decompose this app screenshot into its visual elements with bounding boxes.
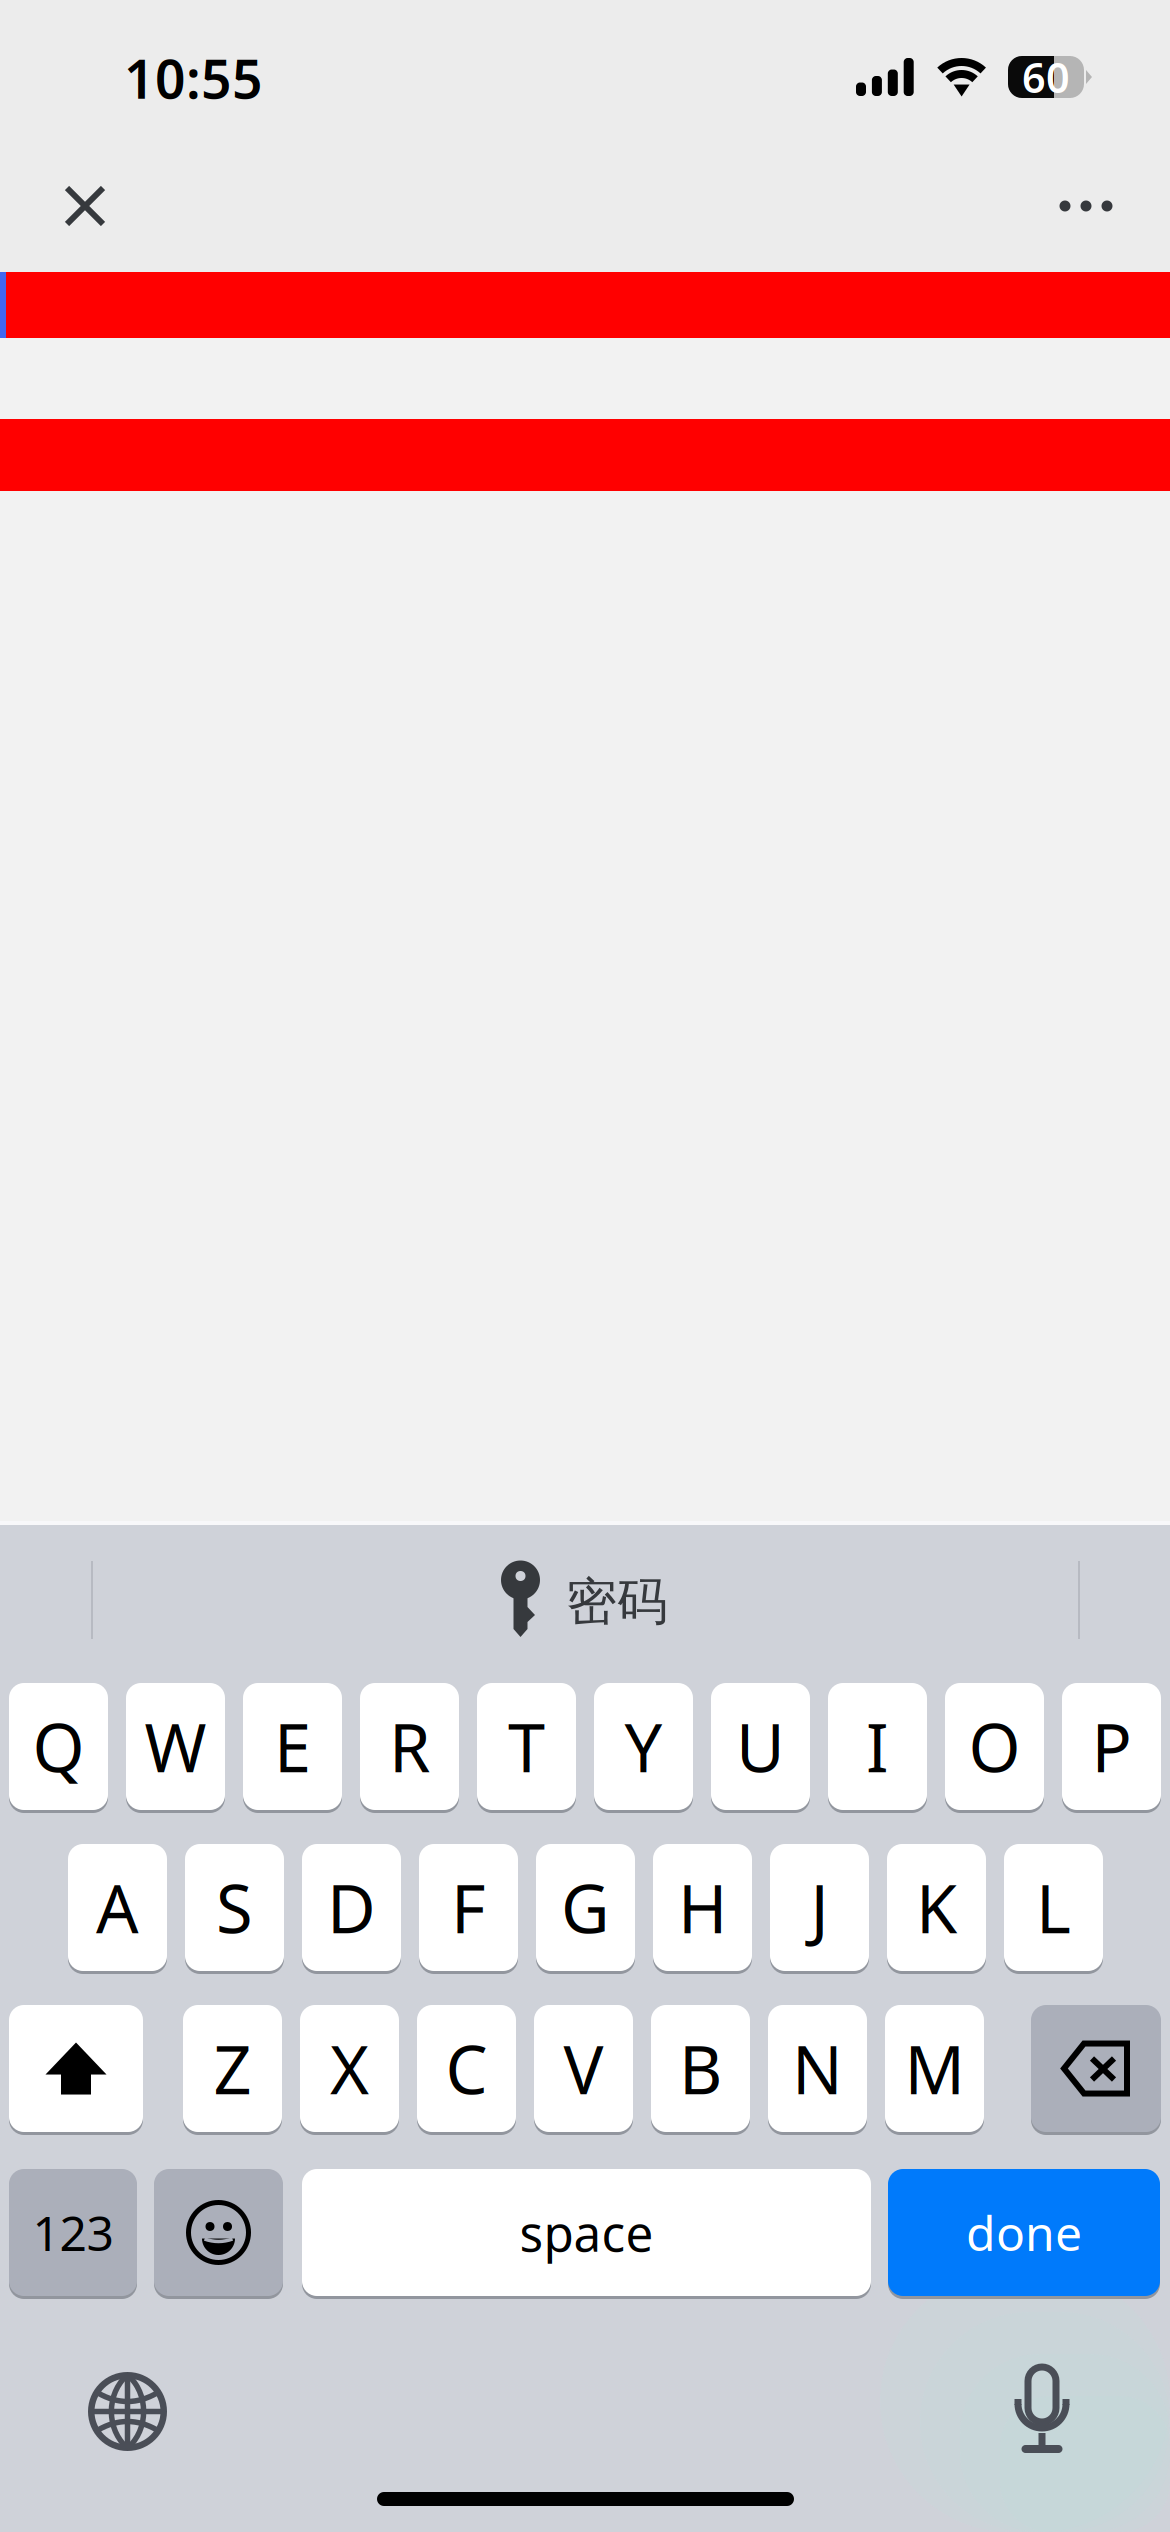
- staticText: D: [327, 1863, 376, 1952]
- button[interactable]: 密码: [493, 1546, 793, 1656]
- button[interactable]: Next keyboard: [88, 2372, 167, 2451]
- button[interactable]: X: [300, 2005, 399, 2132]
- button[interactable]: Dictation: [1014, 2366, 1072, 2454]
- staticText: U: [736, 1702, 785, 1791]
- staticText: 密码: [566, 1571, 668, 1633]
- staticText: Q: [32, 1702, 84, 1791]
- button[interactable]: C: [417, 2005, 516, 2132]
- button[interactable]: space: [302, 2169, 871, 2296]
- staticText: P: [1091, 1702, 1131, 1791]
- button[interactable]: A: [68, 1844, 167, 1971]
- button[interactable]: More options: [1053, 176, 1119, 236]
- staticText: Z: [213, 2024, 251, 2113]
- button[interactable]: N: [768, 2005, 867, 2132]
- staticText: 123: [32, 2201, 113, 2264]
- button[interactable]: Shift: [9, 2005, 143, 2132]
- button[interactable]: Close: [55, 176, 115, 236]
- button[interactable]: Y: [594, 1683, 693, 1810]
- staticText: M: [904, 2024, 964, 2113]
- button[interactable]: H: [653, 1844, 752, 1971]
- button[interactable]: F: [419, 1844, 518, 1971]
- button[interactable]: P: [1062, 1683, 1161, 1810]
- button[interactable]: G: [536, 1844, 635, 1971]
- button[interactable]: R: [360, 1683, 459, 1810]
- staticText: K: [916, 1863, 957, 1952]
- button[interactable]: T: [477, 1683, 576, 1810]
- button[interactable]: Emoji: [154, 2169, 283, 2296]
- staticText: F: [451, 1863, 486, 1952]
- button[interactable]: E: [243, 1683, 342, 1810]
- staticText: 60: [1022, 50, 1070, 104]
- staticText: R: [389, 1702, 430, 1791]
- staticText: 10:55: [124, 43, 263, 113]
- button[interactable]: 123: [9, 2169, 137, 2296]
- staticText: E: [274, 1702, 311, 1791]
- staticText: T: [508, 1702, 545, 1791]
- button[interactable]: S: [185, 1844, 284, 1971]
- button[interactable]: done: [888, 2169, 1160, 2296]
- button[interactable]: M: [885, 2005, 984, 2132]
- staticText: O: [968, 1702, 1020, 1791]
- button[interactable]: D: [302, 1844, 401, 1971]
- staticText: S: [216, 1863, 253, 1952]
- staticText: I: [866, 1702, 889, 1791]
- button[interactable]: Delete: [1031, 2005, 1161, 2132]
- button[interactable]: Q: [9, 1683, 108, 1810]
- button[interactable]: Z: [183, 2005, 282, 2132]
- staticText: Y: [624, 1702, 662, 1791]
- button[interactable]: J: [770, 1844, 869, 1971]
- staticText: done: [966, 2201, 1082, 2264]
- staticText: J: [810, 1863, 828, 1952]
- staticText: X: [330, 2024, 369, 2113]
- staticText: space: [519, 2200, 653, 2265]
- staticText: W: [144, 1702, 206, 1791]
- staticText: N: [792, 2024, 843, 2113]
- staticText: B: [679, 2024, 722, 2113]
- staticText: G: [561, 1863, 610, 1952]
- staticText: V: [563, 2024, 603, 2113]
- button[interactable]: W: [126, 1683, 225, 1810]
- button[interactable]: B: [651, 2005, 750, 2132]
- staticText: A: [96, 1863, 139, 1952]
- button[interactable]: V: [534, 2005, 633, 2132]
- staticText: L: [1036, 1863, 1071, 1952]
- button[interactable]: I: [828, 1683, 927, 1810]
- staticText: C: [445, 2024, 487, 2113]
- button[interactable]: O: [945, 1683, 1044, 1810]
- staticText: H: [678, 1863, 727, 1952]
- button[interactable]: K: [887, 1844, 986, 1971]
- button[interactable]: U: [711, 1683, 810, 1810]
- button[interactable]: L: [1004, 1844, 1103, 1971]
